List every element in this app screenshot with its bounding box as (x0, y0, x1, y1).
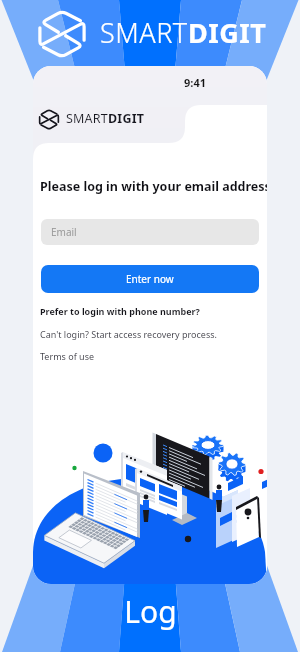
staticText: DIGIT (188, 14, 267, 51)
button[interactable]: Enter now (41, 265, 259, 293)
staticText: SMART (100, 14, 188, 51)
staticText: DIGIT (108, 110, 145, 127)
staticText: 9:41 (184, 75, 206, 90)
button[interactable]: Can't login? Start access recovery proce… (40, 328, 217, 340)
button[interactable]: Prefer to login with phone number? (40, 305, 200, 317)
staticText: Please log in with your email address (40, 178, 267, 195)
button[interactable]: Terms of use (40, 350, 95, 362)
staticText: Enter now (126, 272, 174, 286)
button[interactable]: Email (41, 219, 259, 245)
staticText: Log (124, 591, 177, 632)
staticText: SMART (66, 110, 108, 127)
staticText: Email (51, 225, 77, 239)
